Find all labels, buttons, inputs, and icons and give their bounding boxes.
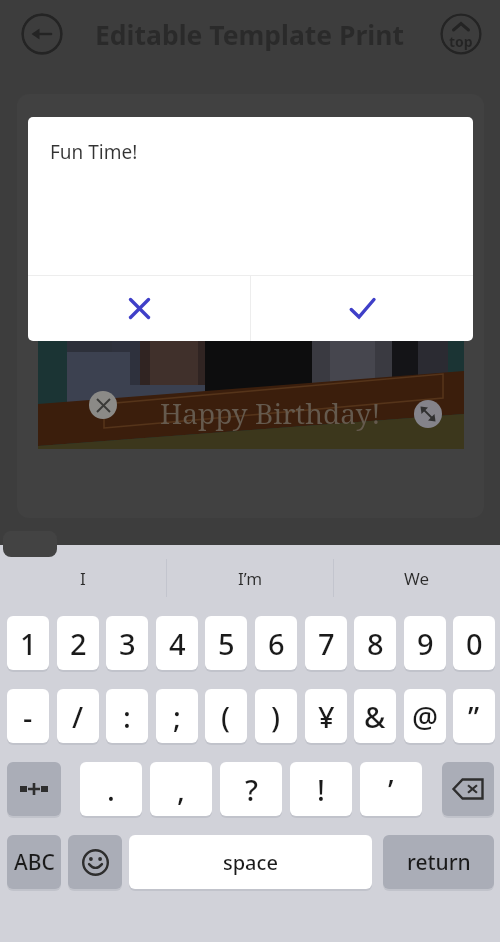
staticText: : bbox=[123, 697, 131, 736]
staticText: ( bbox=[221, 697, 231, 736]
button[interactable]: Symbols bbox=[7, 762, 61, 816]
button[interactable]: 0 bbox=[453, 616, 495, 670]
staticText: ! bbox=[317, 770, 325, 809]
staticText: space bbox=[223, 849, 278, 876]
button[interactable]: / bbox=[57, 689, 99, 743]
button[interactable]: 9 bbox=[404, 616, 446, 670]
staticText: 1 bbox=[20, 624, 37, 663]
button[interactable]: 7 bbox=[305, 616, 347, 670]
button[interactable]: Back bbox=[21, 13, 63, 55]
staticText: I’m bbox=[238, 567, 263, 590]
staticText: 8 bbox=[367, 624, 384, 663]
button[interactable]: . bbox=[80, 762, 142, 816]
button[interactable]: 4 bbox=[156, 616, 198, 670]
staticText: 7 bbox=[318, 624, 335, 663]
button[interactable]: 8 bbox=[354, 616, 396, 670]
staticText: Fun Time! bbox=[50, 139, 138, 165]
button[interactable]: space bbox=[129, 835, 372, 889]
button[interactable]: 3 bbox=[106, 616, 148, 670]
staticText: ” bbox=[468, 697, 480, 736]
staticText: top bbox=[449, 32, 473, 51]
button[interactable]: I’m bbox=[167, 548, 333, 608]
button[interactable]: & bbox=[354, 689, 396, 743]
staticText: 2 bbox=[70, 624, 87, 663]
button[interactable]: ABC bbox=[7, 835, 61, 889]
staticText: 3 bbox=[119, 624, 136, 663]
button[interactable]: Resize bbox=[414, 400, 442, 428]
staticText: ? bbox=[245, 770, 258, 809]
button[interactable]: Scroll to top bbox=[440, 13, 482, 55]
button[interactable]: 2 bbox=[57, 616, 99, 670]
staticText: . bbox=[107, 770, 115, 809]
staticText: 4 bbox=[169, 624, 186, 663]
button[interactable]: 5 bbox=[205, 616, 247, 670]
button[interactable]: : bbox=[106, 689, 148, 743]
staticText: , bbox=[177, 770, 185, 809]
button[interactable]: Remove bbox=[89, 391, 117, 419]
staticText: return bbox=[407, 848, 471, 877]
button[interactable]: 6 bbox=[255, 616, 297, 670]
staticText: 5 bbox=[218, 624, 235, 663]
button[interactable]: @ bbox=[404, 689, 446, 743]
button[interactable]: ’ bbox=[360, 762, 422, 816]
button[interactable]: ; bbox=[156, 689, 198, 743]
staticText: ABC bbox=[14, 848, 55, 877]
button[interactable]: ? bbox=[220, 762, 282, 816]
staticText: We bbox=[404, 567, 430, 590]
button[interactable]: ( bbox=[205, 689, 247, 743]
button[interactable]: I bbox=[0, 548, 166, 608]
button[interactable]: Backspace bbox=[442, 762, 494, 816]
button[interactable]: ” bbox=[453, 689, 495, 743]
button[interactable]: ) bbox=[255, 689, 297, 743]
staticText: 9 bbox=[417, 624, 434, 663]
button[interactable]: Confirm bbox=[251, 276, 473, 341]
staticText: / bbox=[72, 697, 84, 736]
button[interactable]: Cancel bbox=[28, 276, 250, 341]
staticText: @ bbox=[412, 697, 439, 736]
button[interactable]: ¥ bbox=[305, 689, 347, 743]
button[interactable]: 1 bbox=[7, 616, 49, 670]
staticText: ’ bbox=[388, 770, 394, 809]
button[interactable]: Emoji bbox=[68, 835, 122, 889]
button[interactable]: ! bbox=[290, 762, 352, 816]
staticText: - bbox=[23, 697, 33, 736]
staticText: & bbox=[364, 697, 386, 736]
staticText: 6 bbox=[268, 624, 285, 663]
button[interactable]: return bbox=[383, 835, 494, 889]
staticText: ¥ bbox=[318, 697, 335, 736]
staticText: I bbox=[80, 567, 86, 590]
button[interactable]: We bbox=[334, 548, 500, 608]
button[interactable]: , bbox=[150, 762, 212, 816]
staticText: Editable Template Print bbox=[95, 17, 405, 53]
button[interactable]: - bbox=[7, 689, 49, 743]
staticText: ; bbox=[173, 697, 181, 736]
staticText: ) bbox=[271, 697, 281, 736]
staticText: 0 bbox=[466, 624, 483, 663]
staticText: Happy Birthday! bbox=[160, 394, 381, 432]
